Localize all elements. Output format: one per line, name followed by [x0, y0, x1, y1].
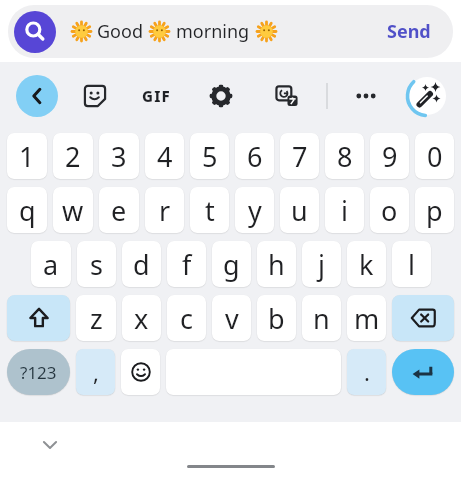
staticText: j: [318, 246, 325, 283]
button[interactable]: 4: [145, 133, 184, 179]
button[interactable]: Good: [8, 5, 453, 58]
staticText: 8: [337, 138, 353, 175]
button[interactable]: 5: [190, 133, 229, 179]
staticText: GIF: [142, 86, 171, 106]
button[interactable]: x: [122, 295, 161, 341]
button[interactable]: [392, 295, 454, 341]
staticText: b: [268, 300, 285, 337]
button[interactable]: r: [145, 187, 184, 233]
staticText: s: [90, 246, 103, 283]
button[interactable]: y: [235, 187, 274, 233]
staticText: h: [268, 246, 285, 283]
staticText: d: [133, 246, 150, 283]
staticText: x: [134, 300, 149, 337]
button[interactable]: [83, 84, 107, 108]
button[interactable]: u: [280, 187, 319, 233]
staticText: morning: [176, 19, 250, 44]
staticText: q: [19, 192, 36, 229]
button[interactable]: z: [76, 295, 116, 341]
staticText: 5: [202, 138, 218, 175]
staticText: Good: [97, 19, 143, 44]
staticText: p: [426, 192, 443, 229]
staticText: n: [313, 300, 330, 337]
button[interactable]: m: [347, 295, 386, 341]
staticText: 2: [65, 138, 81, 175]
button[interactable]: ,: [76, 349, 115, 395]
button[interactable]: h: [257, 241, 296, 287]
staticText: l: [408, 246, 415, 283]
button[interactable]: o: [370, 187, 409, 233]
button[interactable]: j: [302, 241, 341, 287]
staticText: 1: [19, 138, 35, 175]
button[interactable]: 7: [280, 133, 319, 179]
button[interactable]: [392, 349, 454, 395]
button[interactable]: f: [167, 241, 206, 287]
button[interactable]: l: [392, 241, 431, 287]
button[interactable]: 0: [415, 133, 454, 179]
button[interactable]: [275, 84, 299, 108]
staticText: f: [182, 246, 192, 283]
button[interactable]: 3: [99, 133, 139, 179]
staticText: k: [359, 246, 374, 283]
staticText: t: [205, 192, 215, 229]
staticText: 3: [111, 138, 127, 175]
button[interactable]: i: [325, 187, 364, 233]
staticText: .: [364, 357, 370, 387]
button[interactable]: a: [31, 241, 71, 287]
button[interactable]: c: [167, 295, 206, 341]
button[interactable]: 8: [325, 133, 364, 179]
button[interactable]: [7, 295, 70, 341]
button[interactable]: s: [77, 241, 116, 287]
staticText: v: [225, 300, 239, 337]
button[interactable]: [354, 84, 378, 108]
staticText: z: [90, 300, 103, 337]
button[interactable]: w: [53, 187, 93, 233]
staticText: 9: [382, 138, 398, 175]
button[interactable]: v: [212, 295, 251, 341]
button[interactable]: [404, 73, 450, 119]
button[interactable]: [121, 349, 160, 395]
button[interactable]: p: [415, 187, 454, 233]
staticText: e: [111, 192, 127, 229]
button[interactable]: b: [257, 295, 296, 341]
staticText: a: [43, 246, 59, 283]
button[interactable]: g: [212, 241, 251, 287]
staticText: ?123: [20, 361, 57, 384]
staticText: 0: [427, 138, 443, 175]
button[interactable]: .: [347, 349, 386, 395]
button[interactable]: ?123: [7, 349, 70, 395]
button[interactable]: e: [99, 187, 139, 233]
button[interactable]: n: [302, 295, 341, 341]
staticText: g: [223, 246, 240, 283]
button[interactable]: q: [7, 187, 47, 233]
button[interactable]: Send: [383, 19, 435, 44]
button[interactable]: [16, 75, 58, 117]
button[interactable]: 9: [370, 133, 409, 179]
staticText: i: [341, 192, 348, 229]
staticText: c: [180, 300, 193, 337]
staticText: 6: [247, 138, 263, 175]
button[interactable]: t: [190, 187, 229, 233]
staticText: w: [62, 192, 84, 229]
button[interactable]: 2: [53, 133, 93, 179]
button[interactable]: 1: [7, 133, 47, 179]
staticText: y: [248, 192, 262, 229]
button[interactable]: [209, 84, 233, 108]
button[interactable]: k: [347, 241, 386, 287]
staticText: ,: [93, 357, 99, 387]
button[interactable]: GIF: [138, 84, 174, 108]
staticText: o: [381, 192, 398, 229]
button[interactable]: 6: [235, 133, 274, 179]
staticText: r: [159, 192, 171, 229]
staticText: 4: [157, 138, 173, 175]
staticText: m: [354, 300, 380, 337]
staticText: Send: [387, 19, 431, 44]
staticText: 7: [292, 138, 308, 175]
button[interactable]: d: [122, 241, 161, 287]
staticText: u: [291, 192, 308, 229]
button[interactable]: [14, 11, 56, 53]
